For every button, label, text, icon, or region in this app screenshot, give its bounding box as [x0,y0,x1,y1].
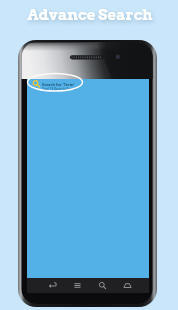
button[interactable]: Search for 'Term' [27,79,149,93]
button[interactable]: Search [90,278,115,293]
staticText: Total 74 Records Found [42,87,76,91]
button[interactable]: Back [40,278,65,293]
button[interactable]: Home [115,278,140,293]
staticText: Search for 'Term' [42,82,75,87]
button[interactable]: Menu [65,278,90,293]
staticText: Advance Search [1,6,178,24]
